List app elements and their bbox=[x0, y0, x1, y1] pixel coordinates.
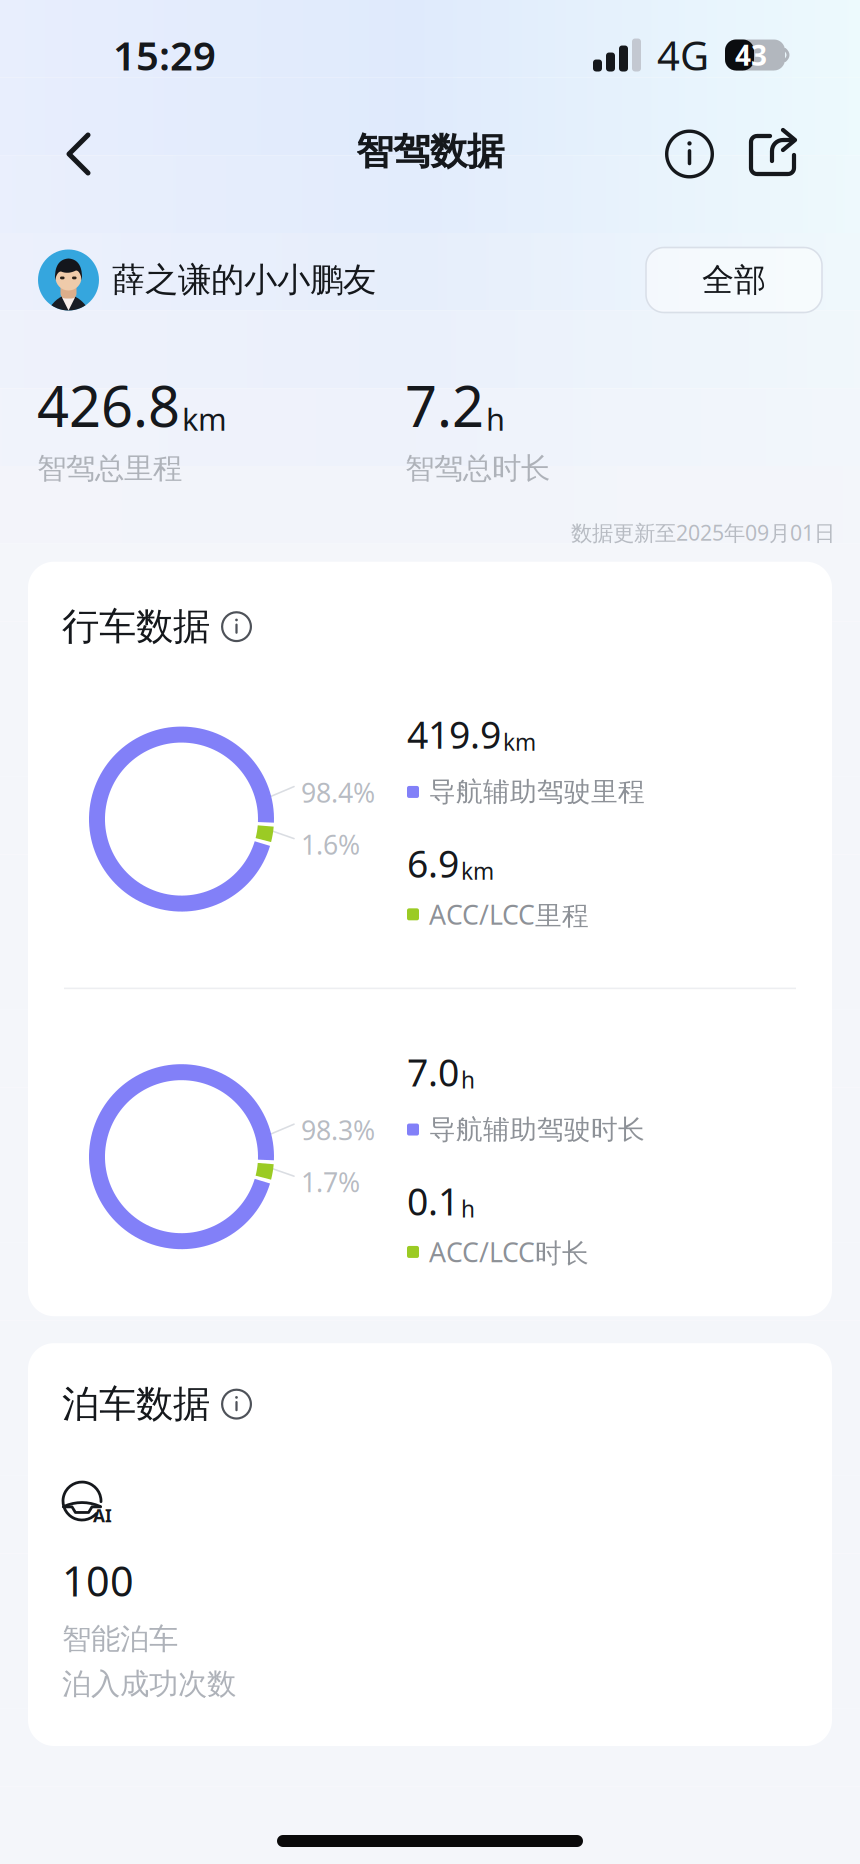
staticText: 导航辅助驾驶时长 bbox=[429, 1113, 645, 1146]
staticText: 薛之谦的小小鹏友 bbox=[112, 259, 376, 300]
staticText: 智能泊车 bbox=[62, 1621, 178, 1657]
staticText: 98.4% bbox=[301, 775, 375, 810]
staticText: 98.3% bbox=[301, 1112, 375, 1148]
staticText: 43 bbox=[735, 36, 767, 74]
staticText: 0.1 bbox=[407, 1176, 459, 1226]
staticText: 6.9 bbox=[407, 839, 459, 888]
staticText: 泊车数据 bbox=[62, 1381, 210, 1427]
staticText: 导航辅助驾驶里程 bbox=[429, 776, 645, 808]
staticText: 4G bbox=[657, 28, 709, 81]
staticText: ACC/LCC时长 bbox=[429, 1234, 589, 1270]
staticText: 419.9 bbox=[407, 710, 501, 759]
staticText: 426.8 bbox=[37, 368, 180, 442]
button[interactable]: Share bbox=[728, 119, 816, 189]
button[interactable]: Info bbox=[651, 115, 728, 192]
staticText: 智驾数据 bbox=[356, 129, 504, 174]
staticText: AI bbox=[93, 1504, 112, 1527]
staticText: 智驾总里程 bbox=[37, 450, 182, 486]
staticText: 7.0 bbox=[407, 1047, 459, 1097]
staticText: 7.2 bbox=[405, 368, 484, 442]
staticText: 100 bbox=[62, 1553, 134, 1608]
staticText: km bbox=[182, 398, 227, 439]
staticText: h bbox=[461, 1194, 475, 1224]
staticText: 泊入成功次数 bbox=[62, 1666, 236, 1702]
staticText: 全部 bbox=[702, 260, 766, 300]
staticText: 1.7% bbox=[301, 1164, 360, 1200]
staticText: km bbox=[503, 727, 536, 757]
staticText: 1.6% bbox=[301, 827, 360, 862]
staticText: h bbox=[461, 1065, 475, 1095]
staticText: 行车数据 bbox=[62, 604, 210, 650]
button[interactable]: 全部 bbox=[646, 247, 822, 312]
staticText: 15:29 bbox=[113, 28, 216, 81]
button[interactable]: Back bbox=[0, 118, 124, 190]
staticText: h bbox=[486, 398, 505, 439]
staticText: 数据更新至2025年09月01日 bbox=[571, 518, 835, 547]
staticText: km bbox=[461, 856, 494, 886]
staticText: ACC/LCC里程 bbox=[429, 897, 589, 932]
staticText: 智驾总时长 bbox=[405, 450, 550, 486]
